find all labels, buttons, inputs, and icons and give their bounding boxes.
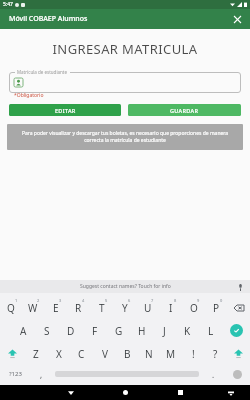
staticText: 2: [37, 298, 40, 303]
staticText: P: [213, 301, 220, 315]
button[interactable]: K: [176, 319, 199, 342]
button[interactable]: F: [83, 319, 107, 342]
staticText: T: [99, 301, 105, 315]
staticText: B: [124, 347, 131, 361]
staticText: Para poder visualizar y descargar tus bo…: [21, 130, 229, 144]
button[interactable]: !: [182, 342, 204, 365]
button[interactable]: A: [11, 319, 35, 342]
staticText: U: [144, 301, 152, 315]
staticText: INGRESAR MATRICULA: [0, 40, 250, 58]
staticText: V: [102, 347, 108, 361]
staticText: Suggest contact names? Touch for info: [80, 283, 171, 290]
staticText: R: [75, 301, 82, 315]
staticText: J: [163, 324, 166, 338]
button[interactable]: U: [136, 296, 159, 319]
button[interactable]: Shift: [0, 342, 24, 365]
button[interactable]: Emoji: [224, 365, 250, 383]
staticText: X: [56, 347, 62, 361]
staticText: GUARDAR: [170, 107, 199, 114]
button[interactable]: W: [22, 296, 44, 319]
button[interactable]: Home: [98, 385, 153, 400]
button[interactable]: Shift: [226, 342, 250, 365]
staticText: 5:47: [3, 1, 13, 8]
staticText: ?123: [9, 370, 22, 378]
button[interactable]: Z: [24, 342, 47, 365]
staticText: *Obligatorio: [14, 92, 44, 99]
button[interactable]: T: [90, 296, 113, 319]
button[interactable]: B: [116, 342, 138, 365]
staticText: 5: [105, 298, 108, 303]
button[interactable]: N: [138, 342, 160, 365]
staticText: Y: [122, 301, 128, 315]
staticText: Q: [7, 301, 15, 315]
button[interactable]: Close: [230, 12, 244, 26]
button[interactable]: [9, 72, 241, 93]
staticText: 0: [220, 298, 223, 303]
button[interactable]: X: [47, 342, 70, 365]
staticText: N: [145, 347, 153, 361]
staticText: !: [192, 347, 195, 361]
staticText: E: [53, 301, 59, 315]
staticText: 6: [128, 298, 131, 303]
button[interactable]: Recents: [153, 385, 208, 400]
staticText: I: [169, 301, 173, 315]
staticText: D: [67, 324, 75, 338]
staticText: 3: [59, 298, 62, 303]
staticText: 7: [151, 298, 154, 303]
staticText: G: [115, 324, 123, 338]
staticText: O: [190, 301, 198, 315]
button[interactable]: Q: [0, 296, 22, 319]
staticText: F: [92, 324, 98, 338]
button[interactable]: Y: [113, 296, 136, 319]
button[interactable]: I: [159, 296, 182, 319]
staticText: M: [166, 347, 176, 361]
button[interactable]: H: [130, 319, 153, 342]
button[interactable]: GUARDAR: [128, 104, 241, 116]
staticText: ,: [40, 369, 43, 380]
button[interactable]: Hide keyboard: [226, 388, 236, 398]
button[interactable]: Backspace: [228, 296, 250, 319]
staticText: ?: [213, 347, 218, 361]
button[interactable]: D: [59, 319, 83, 342]
staticText: Móvil COBAEP Alumnos: [9, 14, 88, 24]
staticText: S: [44, 324, 50, 338]
button[interactable]: Back: [43, 385, 98, 400]
button[interactable]: E: [44, 296, 67, 319]
button[interactable]: EDITAR: [9, 104, 121, 116]
button[interactable]: .: [202, 365, 224, 383]
button[interactable]: L: [199, 319, 222, 342]
button[interactable]: G: [107, 319, 130, 342]
button[interactable]: J: [153, 319, 176, 342]
button[interactable]: V: [93, 342, 116, 365]
staticText: EDITAR: [55, 107, 76, 114]
button[interactable]: ?: [204, 342, 226, 365]
staticText: L: [208, 324, 214, 338]
button[interactable]: P: [205, 296, 228, 319]
staticText: Z: [33, 347, 39, 361]
staticText: 4: [82, 298, 85, 303]
button[interactable]: R: [67, 296, 90, 319]
staticText: K: [184, 324, 191, 338]
button[interactable]: Enter: [222, 319, 250, 342]
button[interactable]: M: [160, 342, 182, 365]
button[interactable]: Voice input: [235, 282, 245, 292]
button[interactable]: ,: [30, 365, 52, 383]
staticText: .: [212, 369, 215, 380]
staticText: H: [138, 324, 146, 338]
staticText: Matrícula de estudiante: [17, 69, 68, 75]
staticText: C: [78, 347, 85, 361]
staticText: W: [28, 301, 38, 315]
button[interactable]: ?123: [0, 365, 30, 383]
staticText: 8: [174, 298, 177, 303]
button[interactable]: C: [70, 342, 93, 365]
staticText: 9: [197, 298, 200, 303]
button[interactable]: S: [35, 319, 59, 342]
staticText: A: [20, 324, 27, 338]
staticText: 1: [15, 298, 18, 303]
button[interactable]: O: [182, 296, 205, 319]
